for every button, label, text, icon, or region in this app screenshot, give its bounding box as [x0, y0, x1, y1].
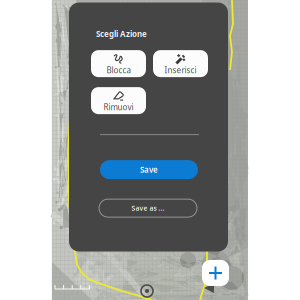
staticText: Blocca	[106, 65, 130, 75]
staticText: Inserisci	[164, 65, 196, 75]
button[interactable]: Inserisci	[153, 50, 208, 77]
button[interactable]: Blocca	[91, 50, 146, 77]
button[interactable]: Rimuovi	[91, 87, 146, 114]
staticText: Scegli Azione	[96, 28, 147, 39]
button[interactable]: Save	[100, 160, 198, 179]
button[interactable]: Add	[202, 260, 229, 286]
staticText: Save as ...	[131, 204, 164, 213]
button[interactable]: Save as ...	[99, 199, 197, 217]
staticText: Rimuovi	[103, 102, 133, 112]
staticText: Save	[140, 164, 158, 175]
